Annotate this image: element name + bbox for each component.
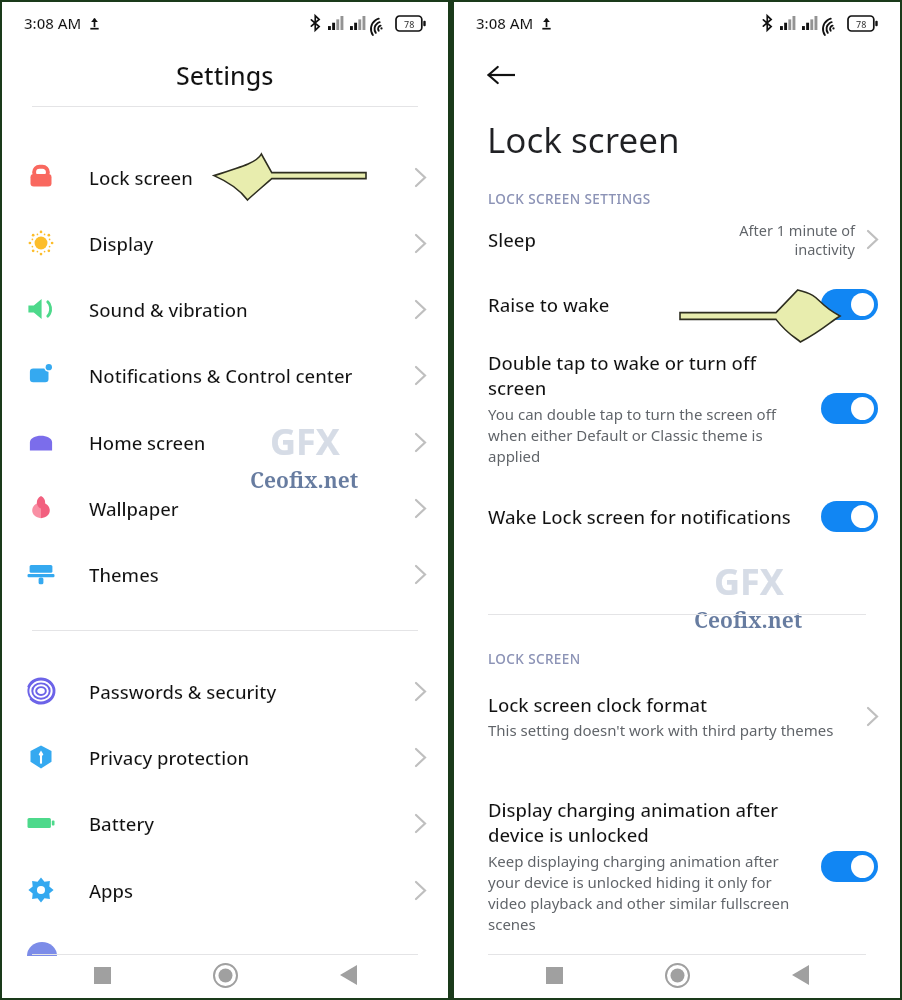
button[interactable]: Raise to wake — [454, 270, 900, 338]
button[interactable]: Toggle — [821, 393, 878, 424]
button[interactable]: Sound & vibration — [2, 276, 448, 342]
staticText: Lock screen — [487, 116, 680, 164]
staticText: Display — [89, 231, 154, 256]
staticText: 78 — [404, 18, 415, 30]
button[interactable]: Toggle — [821, 501, 878, 532]
staticText: 3:08 AM — [476, 13, 534, 33]
staticText: 78 — [856, 18, 867, 30]
button[interactable]: Toggle — [821, 289, 878, 320]
button[interactable]: Back — [777, 952, 823, 998]
button[interactable]: Toggle — [821, 851, 878, 882]
button[interactable]: Notifications & Control center — [2, 342, 448, 408]
staticText: After 1 minute of inactivity — [739, 220, 855, 259]
staticText: Raise to wake — [488, 292, 610, 317]
button[interactable]: Recent apps — [531, 952, 577, 998]
staticText: Wallpaper — [89, 496, 179, 521]
button[interactable]: Apps — [2, 857, 448, 923]
button[interactable]: Display charging animation after device … — [454, 797, 900, 935]
staticText: Wake Lock screen for notifications — [488, 504, 791, 529]
staticText: You can double tap to turn the screen of… — [488, 404, 807, 467]
staticText: GFX — [714, 557, 784, 606]
button[interactable]: Privacy protection — [2, 724, 448, 790]
staticText: Apps — [89, 878, 134, 903]
button[interactable]: Lock screen clock format — [454, 692, 900, 740]
staticText: Lock screen clock format — [488, 692, 708, 717]
button[interactable]: Passwords & security — [2, 658, 448, 724]
staticText: Ceofix.net — [250, 466, 359, 495]
button[interactable]: Double tap to wake or turn off screen — [454, 338, 900, 477]
button[interactable]: Display — [2, 210, 448, 276]
staticText: Settings — [176, 58, 274, 92]
staticText: Themes — [89, 562, 159, 587]
staticText: Display charging animation after device … — [488, 797, 807, 847]
button[interactable]: Sleep — [454, 208, 900, 270]
staticText: Ceofix.net — [694, 606, 803, 635]
staticText: Sleep — [488, 227, 536, 252]
staticText: Keep displaying charging animation after… — [488, 851, 807, 935]
staticText: Home screen — [89, 430, 206, 455]
staticText: GFX — [270, 417, 340, 466]
staticText: Sound & vibration — [89, 297, 248, 322]
staticText: Double tap to wake or turn off screen — [488, 350, 807, 400]
staticText: Privacy protection — [89, 745, 250, 770]
button[interactable]: Recent apps — [79, 952, 125, 998]
button[interactable]: Wake Lock screen for notifications — [454, 495, 900, 538]
staticText: Battery — [89, 811, 155, 836]
button[interactable]: Wallpaper — [2, 475, 448, 541]
button[interactable]: Lock screen — [2, 144, 448, 210]
button[interactable]: Back — [325, 952, 371, 998]
button[interactable]: Home — [202, 952, 248, 998]
staticText: 3:08 AM — [24, 13, 82, 33]
staticText: This setting doesn't work with third par… — [488, 720, 834, 740]
button[interactable]: Home screen — [2, 409, 448, 475]
button[interactable]: Battery — [2, 790, 448, 856]
staticText: LOCK SCREEN SETTINGS — [488, 190, 651, 208]
button[interactable]: Back — [476, 50, 526, 100]
staticText: Lock screen — [89, 165, 193, 190]
button[interactable]: Home — [654, 952, 700, 998]
staticText: LOCK SCREEN — [488, 650, 581, 668]
button[interactable]: Themes — [2, 541, 448, 607]
staticText: Passwords & security — [89, 679, 277, 704]
staticText: Notifications & Control center — [89, 363, 353, 388]
